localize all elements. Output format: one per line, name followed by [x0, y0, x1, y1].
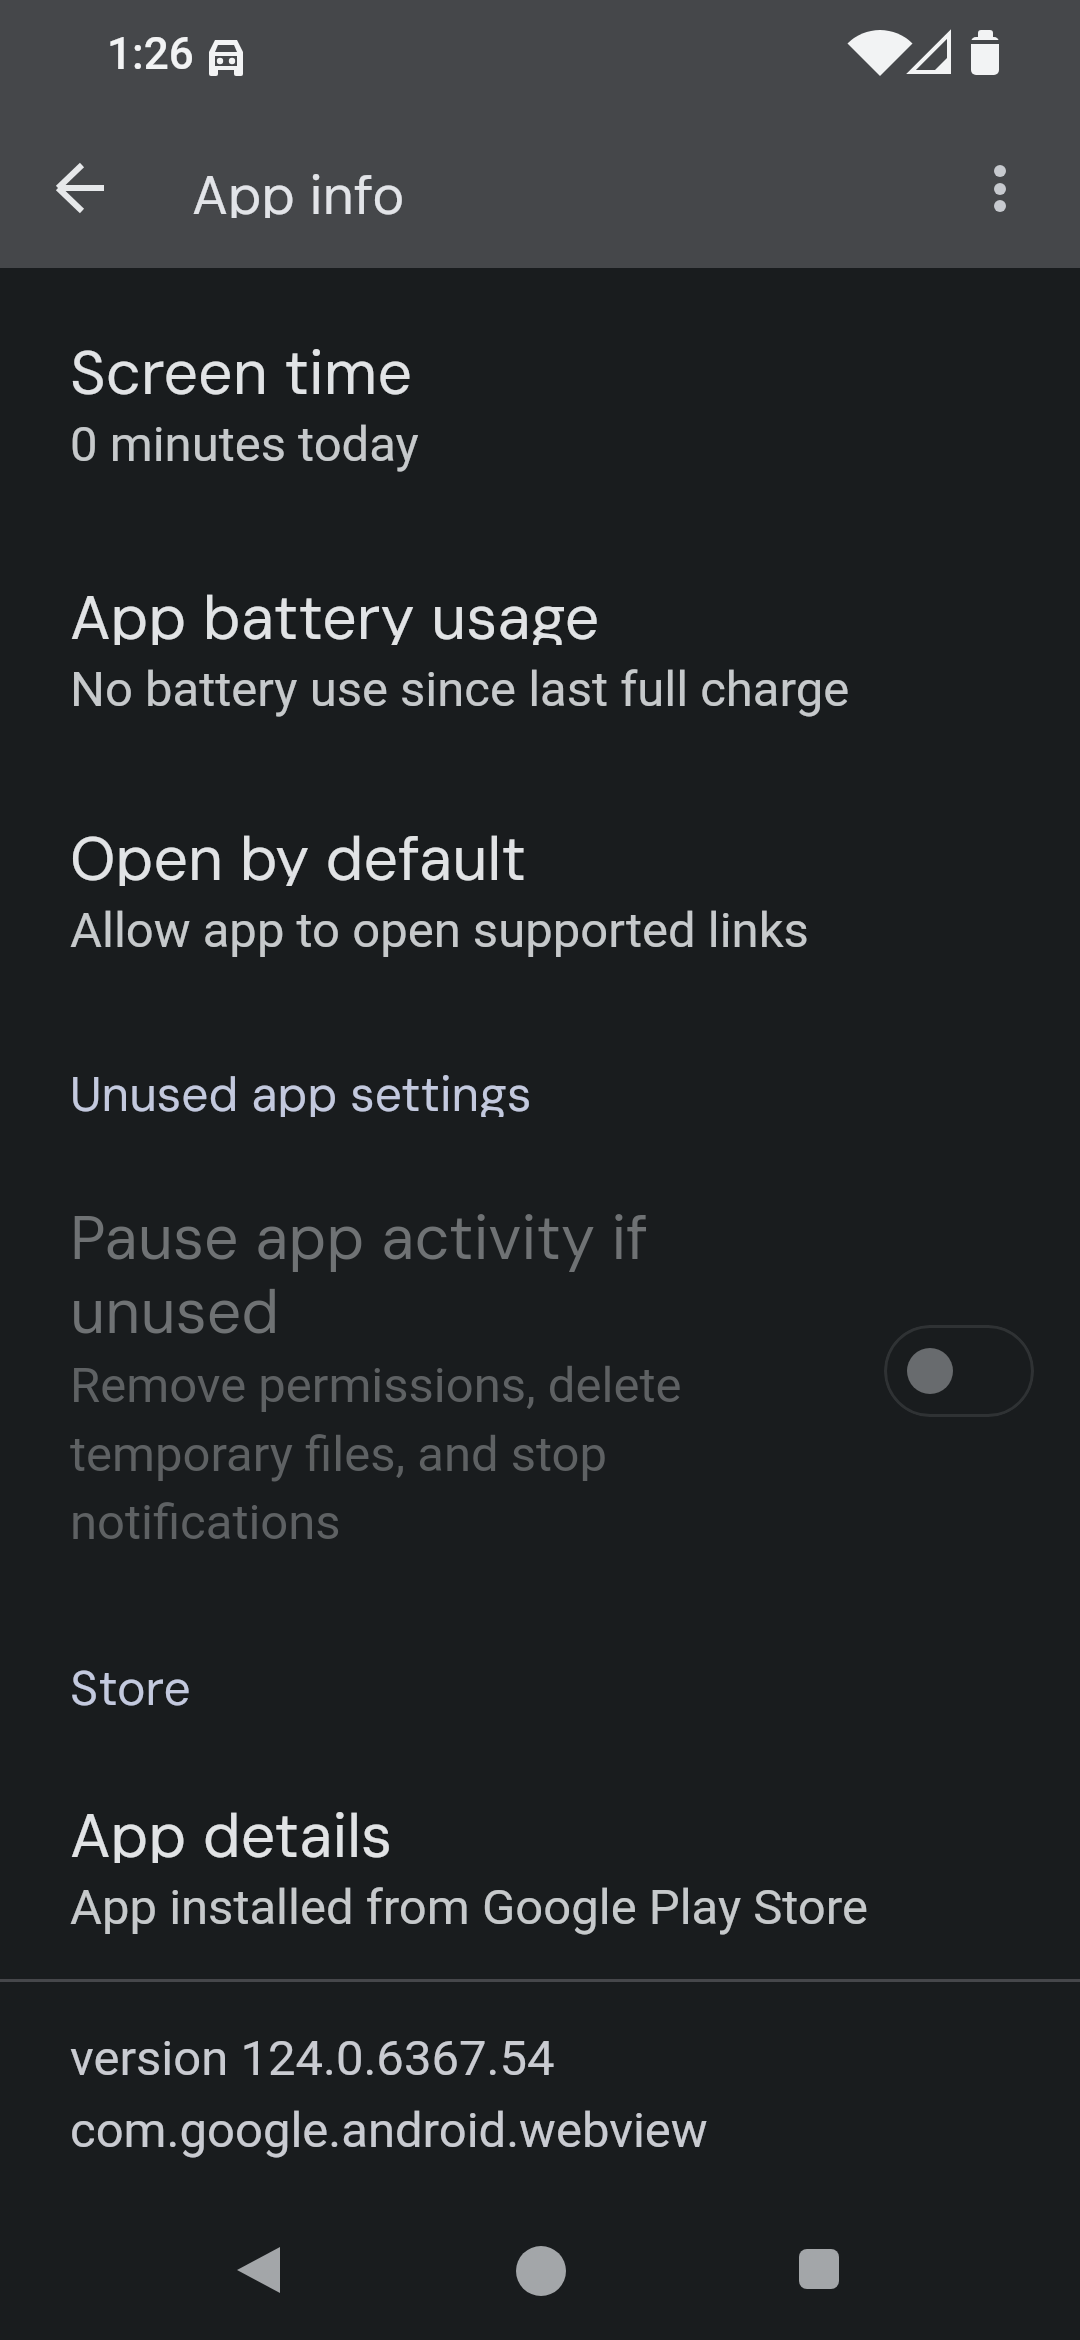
staticText: Pause app activity if unused: [70, 1198, 649, 1348]
staticText: Unused app settings: [70, 1063, 532, 1117]
button[interactable]: [884, 1325, 1034, 1417]
button[interactable]: [952, 142, 1048, 238]
button[interactable]: [747, 2200, 887, 2340]
button[interactable]: App details: [0, 1776, 1080, 1956]
button[interactable]: Pause app activity if unused: [0, 1178, 1080, 1576]
staticText: 1:26: [107, 28, 194, 78]
staticText: Screen time: [70, 333, 412, 400]
staticText: Open by default: [70, 819, 527, 886]
staticText: version 124.0.6367.54 com.google.android…: [70, 2030, 708, 2159]
button[interactable]: Screen time: [0, 313, 1080, 493]
button[interactable]: Open by default: [0, 799, 1080, 979]
staticText: App installed from Google Play Store: [70, 1879, 868, 1936]
button[interactable]: [35, 142, 131, 238]
staticText: App details: [70, 1796, 393, 1863]
staticText: App info: [192, 160, 405, 218]
button[interactable]: App battery usage: [0, 558, 1080, 738]
staticText: Remove permissions, delete temporary fil…: [70, 1357, 682, 1551]
staticText: No battery use since last full charge: [70, 661, 850, 718]
staticText: Store: [70, 1657, 191, 1711]
staticText: Allow app to open supported links: [70, 902, 809, 959]
button[interactable]: [471, 2201, 611, 2340]
staticText: 0 minutes today: [70, 416, 419, 473]
staticText: App battery usage: [70, 578, 600, 645]
button[interactable]: [195, 2200, 335, 2340]
